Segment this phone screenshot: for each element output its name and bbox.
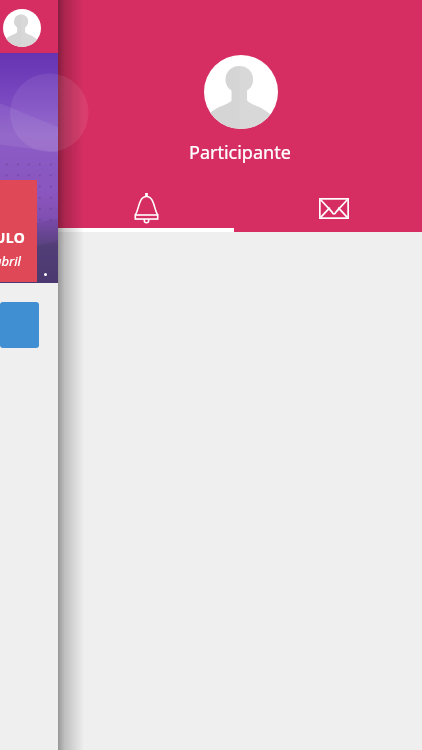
button[interactable]: Messages (234, 184, 422, 232)
button[interactable]: TÍTULO (0, 180, 37, 282)
staticText: 12 de abril (0, 252, 29, 270)
staticText: Participante (189, 140, 291, 165)
button[interactable]: Notifications (58, 184, 234, 232)
staticText: TÍTULO (0, 228, 32, 247)
button[interactable] (0, 302, 39, 348)
